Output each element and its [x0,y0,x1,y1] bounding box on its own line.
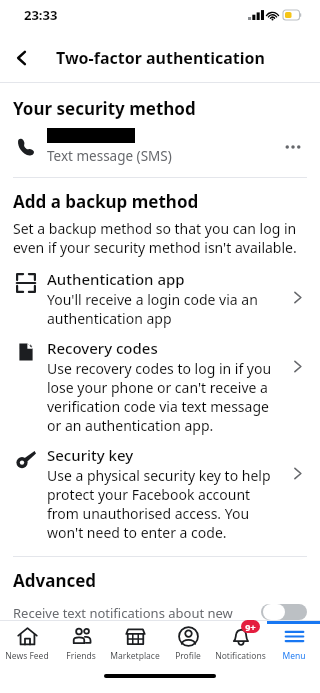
staticText: Notifications [215,650,266,662]
staticText: 9+ [245,621,256,633]
button[interactable]: Profile [161,621,214,667]
staticText: Marketplace [110,650,160,662]
staticText: You'll receive a login code via an authe… [47,290,276,328]
button[interactable]: More options [276,130,310,164]
button[interactable]: Security key [0,445,320,542]
staticText: Add a backup method [13,190,199,213]
staticText: Receive text notifications about new mes… [13,604,247,620]
button[interactable]: Menu [267,621,320,667]
button[interactable]: Friends [54,621,108,667]
button[interactable]: Receive text notifications about new mes… [0,604,320,620]
button[interactable]: Recovery codes [0,338,320,435]
button[interactable]: Marketplace [108,621,161,667]
staticText: Set a backup method so that you can log … [13,219,302,257]
staticText: Your security method [13,97,196,120]
button[interactable]: 9+ [214,621,267,667]
staticText: Authentication app [47,269,185,289]
staticText: Use recovery codes to log in if you lose… [47,359,276,435]
staticText: 23:33 [24,6,58,24]
staticText: Profile [175,650,201,662]
staticText: Security key [47,445,134,465]
button[interactable]: Back [0,36,44,80]
staticText: Recovery codes [47,338,158,358]
button[interactable]: Receive text notifications toggle [261,604,307,620]
button[interactable]: News Feed [0,621,54,667]
button[interactable]: Text message (SMS) [0,128,320,165]
staticText: Menu [282,650,306,662]
button[interactable]: Authentication app [0,269,320,328]
staticText: Text message (SMS) [47,147,172,165]
staticText: Advanced [13,569,97,592]
staticText: Two-factor authentication [56,47,265,69]
staticText: Friends [66,650,96,662]
staticText: News Feed [5,650,49,662]
staticText: Use a physical security key to help prot… [47,466,276,542]
